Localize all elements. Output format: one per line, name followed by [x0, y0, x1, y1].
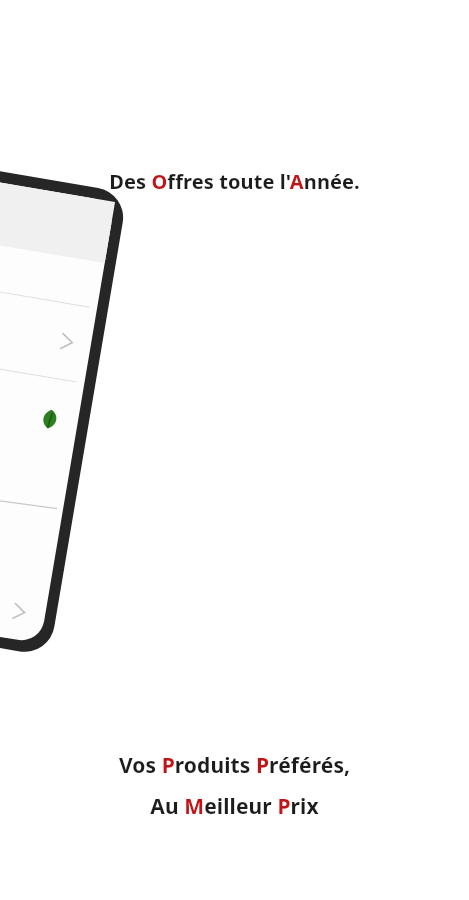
button[interactable]: Vos Produits Préférés,	[0, 751, 469, 821]
staticText: Des Offres toute l'Année.	[14, 168, 455, 195]
button[interactable]: Des Offres toute l'Année.	[0, 168, 469, 195]
staticText: Vos Produits Préférés,	[14, 751, 455, 780]
other: Aperçu de l'application	[0, 0, 469, 900]
staticText: Au Meilleur Prix	[14, 792, 455, 821]
